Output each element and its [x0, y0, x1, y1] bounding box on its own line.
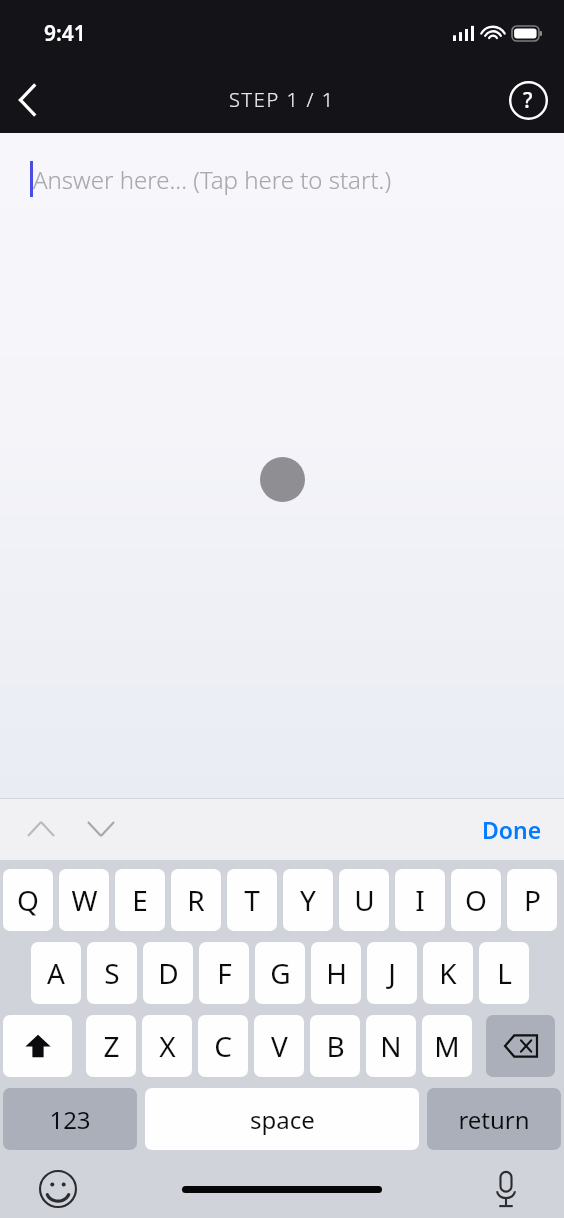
button[interactable]: M	[422, 1015, 472, 1077]
button[interactable]: return	[427, 1088, 561, 1150]
button[interactable]: Answer here... (Tap here to start.)	[30, 161, 544, 197]
staticText: C	[214, 1027, 232, 1065]
staticText: F	[217, 954, 232, 992]
staticText: I	[415, 881, 425, 919]
staticText: S	[104, 954, 120, 992]
button[interactable]: B	[310, 1015, 360, 1077]
button[interactable]: C	[198, 1015, 248, 1077]
staticText: L	[497, 954, 512, 992]
button[interactable]: N	[366, 1015, 416, 1077]
staticText: return	[458, 1103, 530, 1136]
staticText: space	[250, 1103, 315, 1136]
button[interactable]: Previous field	[18, 806, 64, 852]
button[interactable]: Emoji	[34, 1165, 82, 1213]
button[interactable]: U	[339, 869, 389, 931]
button[interactable]: V	[254, 1015, 304, 1077]
button[interactable]: S	[87, 942, 137, 1004]
button[interactable]: Next field	[78, 806, 124, 852]
button[interactable]: A	[31, 942, 81, 1004]
button[interactable]: G	[255, 942, 305, 1004]
staticText: Done	[482, 814, 542, 845]
staticText: Z	[103, 1027, 120, 1065]
staticText: R	[187, 881, 205, 919]
button[interactable]: P	[507, 869, 557, 931]
button[interactable]: Dictation	[482, 1165, 530, 1213]
staticText: X	[159, 1027, 176, 1065]
staticText: A	[47, 954, 65, 992]
button[interactable]: Backspace	[486, 1015, 555, 1077]
button[interactable]: Back	[0, 72, 56, 128]
button[interactable]: 123	[3, 1088, 137, 1150]
button[interactable]: K	[423, 942, 473, 1004]
staticText: B	[326, 1027, 345, 1065]
staticText: T	[244, 881, 260, 919]
staticText: E	[132, 881, 148, 919]
button[interactable]: T	[227, 869, 277, 931]
button[interactable]: L	[479, 942, 529, 1004]
staticText: K	[439, 954, 457, 992]
button[interactable]: I	[395, 869, 445, 931]
button[interactable]: H	[311, 942, 361, 1004]
staticText: N	[380, 1027, 402, 1065]
staticText: G	[270, 954, 291, 992]
button[interactable]: Z	[86, 1015, 136, 1077]
button[interactable]: E	[115, 869, 165, 931]
button[interactable]: Help	[506, 78, 550, 122]
staticText: W	[71, 881, 98, 919]
button[interactable]: J	[367, 942, 417, 1004]
button[interactable]: Record	[260, 457, 305, 502]
staticText: 9:41	[44, 19, 86, 48]
staticText: J	[388, 954, 396, 992]
button[interactable]: Shift	[3, 1015, 72, 1077]
button[interactable]: F	[199, 942, 249, 1004]
staticText: STEP 1 / 1	[229, 86, 335, 113]
button[interactable]: Q	[3, 869, 53, 931]
button[interactable]: D	[143, 942, 193, 1004]
staticText: D	[158, 954, 179, 992]
button[interactable]: W	[59, 869, 109, 931]
button[interactable]: Done	[482, 814, 542, 845]
button[interactable]: O	[451, 869, 501, 931]
button[interactable]: X	[142, 1015, 192, 1077]
staticText: P	[524, 881, 541, 919]
staticText: 123	[49, 1103, 91, 1136]
staticText: Y	[300, 881, 316, 919]
staticText: H	[326, 954, 347, 992]
staticText: Answer here... (Tap here to start.)	[33, 163, 392, 196]
staticText: ?	[523, 86, 533, 115]
staticText: O	[465, 881, 487, 919]
staticText: Q	[17, 881, 39, 919]
staticText: V	[271, 1027, 288, 1065]
staticText: M	[434, 1027, 460, 1065]
button[interactable]: space	[145, 1088, 419, 1150]
button[interactable]: Y	[283, 869, 333, 931]
button[interactable]: R	[171, 869, 221, 931]
staticText: U	[354, 881, 375, 919]
